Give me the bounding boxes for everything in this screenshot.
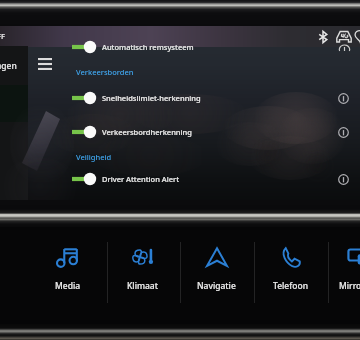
button[interactable]: Navigatie: [179, 227, 253, 307]
staticText: Mirroring: [339, 280, 360, 292]
staticText: Veiligheid: [76, 152, 112, 162]
staticText: Verkeersborden: [76, 67, 134, 77]
button[interactable]: Media: [31, 227, 105, 307]
button[interactable]: Info: [332, 121, 354, 143]
button[interactable]: Menu: [32, 53, 57, 75]
staticText: FF: [0, 31, 5, 41]
button[interactable]: Info: [332, 87, 354, 109]
button[interactable]: Automatisch remsysteem: [0, 36, 360, 58]
staticText: Snelheidslimiet-herkenning: [102, 93, 201, 103]
button[interactable]: Klimaat: [105, 227, 179, 307]
button[interactable]: Mirroring: [321, 227, 360, 307]
staticText: Verkeersbordherkenning: [102, 127, 192, 137]
staticText: Telefoon: [273, 280, 308, 292]
staticText: ngen: [0, 60, 17, 72]
button[interactable]: Telefoon: [253, 227, 327, 307]
button[interactable]: Snelheidslimiet-herkenning: [0, 87, 360, 109]
button[interactable]: Driver Attention Alert: [0, 168, 360, 190]
button[interactable]: Info: [332, 168, 354, 190]
button[interactable]: Verkeersbordherkenning: [0, 121, 360, 143]
staticText: Klimaat: [127, 280, 158, 292]
staticText: Navigatie: [197, 280, 236, 292]
staticText: Automatisch remsysteem: [102, 42, 194, 52]
staticText: Media: [55, 280, 81, 292]
staticText: Driver Attention Alert: [102, 174, 180, 184]
